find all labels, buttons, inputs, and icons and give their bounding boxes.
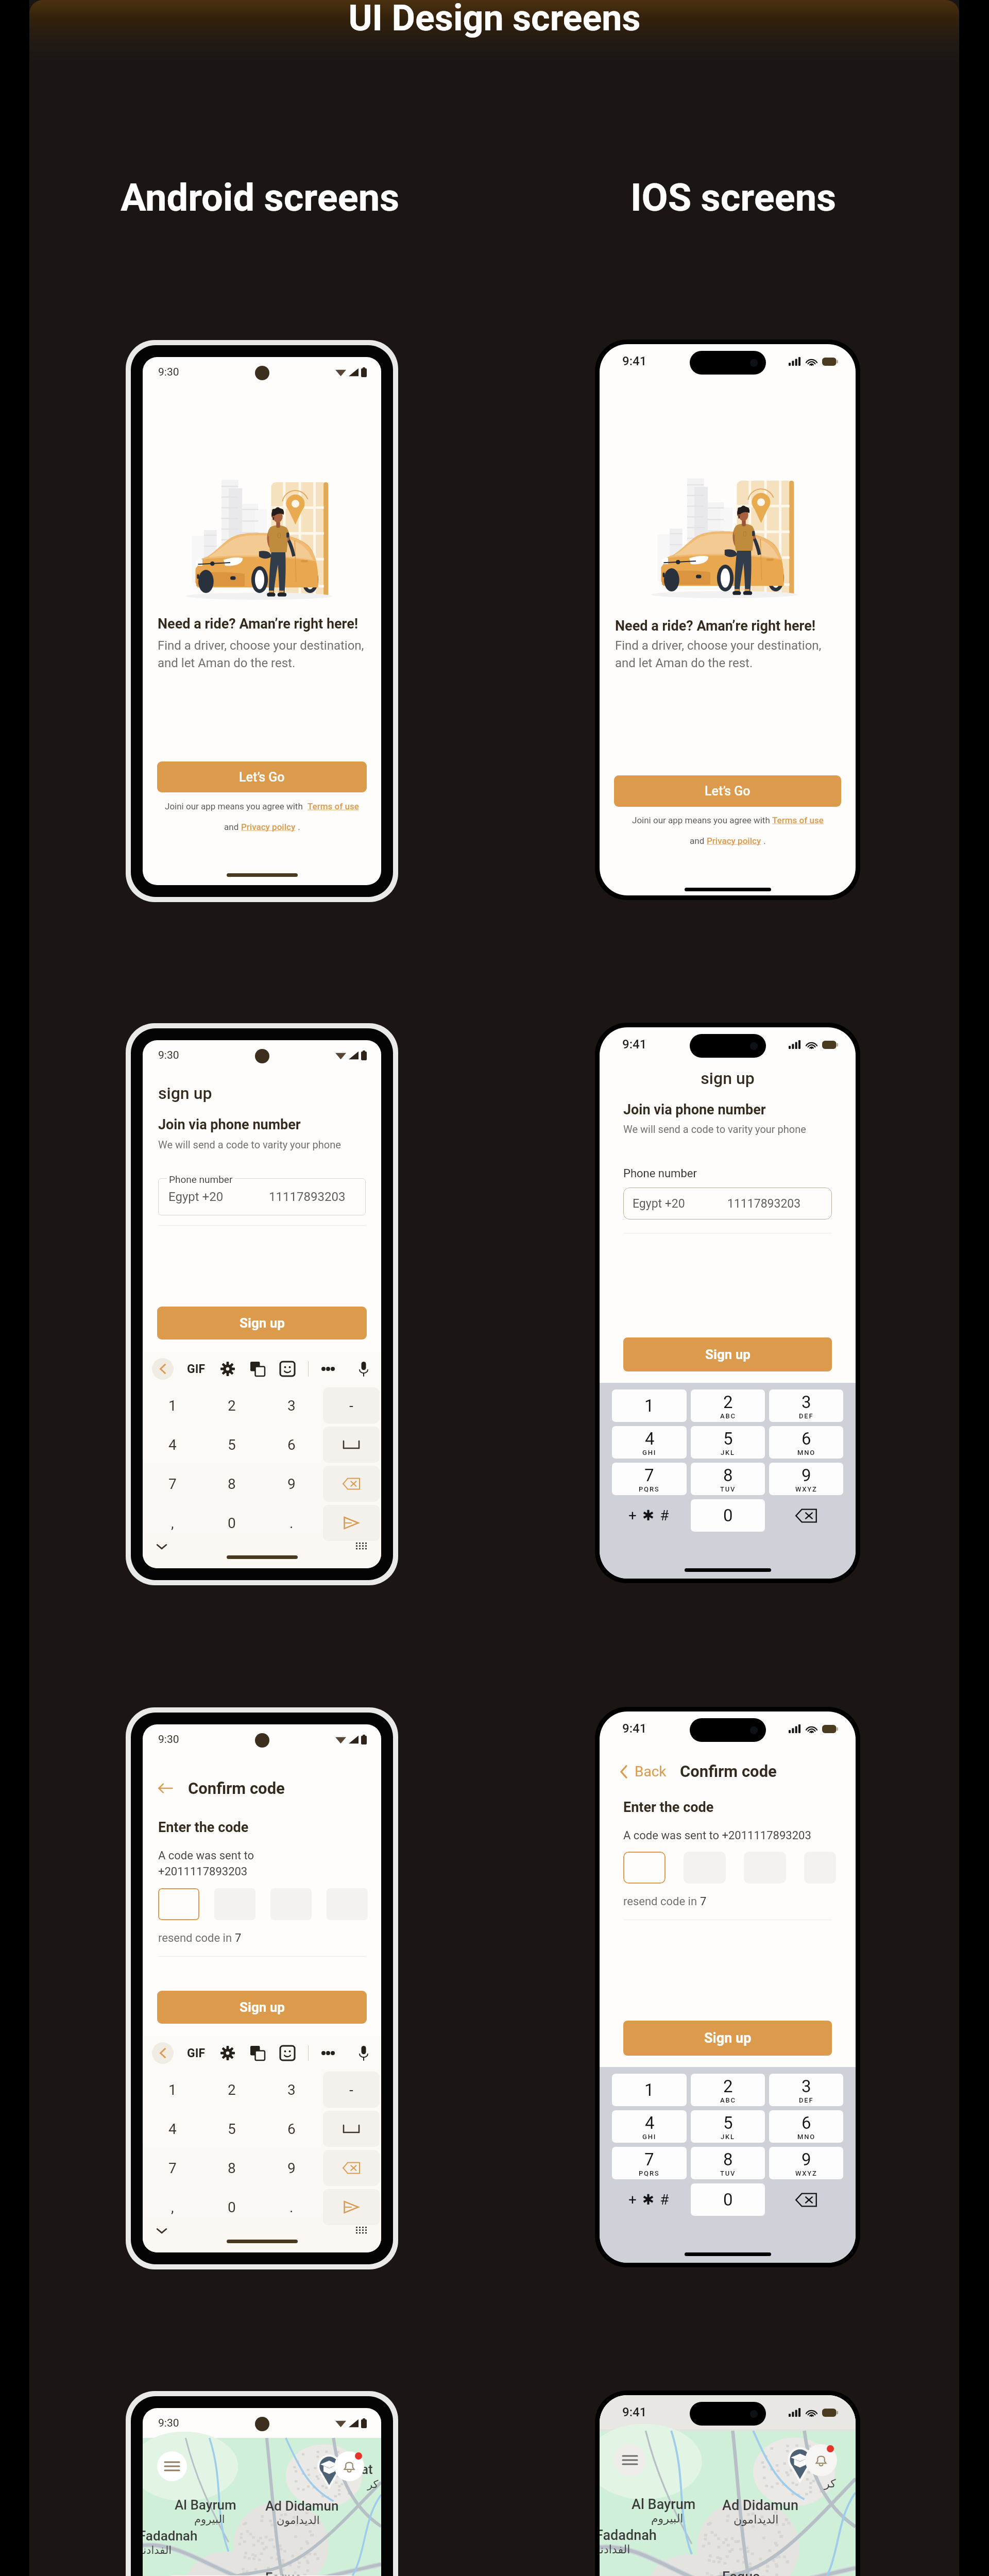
button[interactable]: Translate: [249, 2045, 266, 2061]
button[interactable]: .: [263, 1505, 320, 1541]
button[interactable]: 0: [203, 2189, 260, 2225]
button[interactable]: 2: [203, 1387, 260, 1423]
button[interactable]: 3: [769, 2074, 843, 2106]
button[interactable]: Privacy poilcy: [241, 822, 296, 832]
button[interactable]: 7: [144, 2150, 200, 2186]
button[interactable]: 1: [612, 2074, 687, 2106]
button[interactable]: Sign up: [623, 2021, 832, 2056]
button[interactable]: Sign up: [157, 1991, 367, 2024]
button[interactable]: 2: [691, 1389, 765, 1422]
button[interactable]: .: [263, 2189, 320, 2225]
button[interactable]: 6: [263, 1427, 320, 1463]
button[interactable]: Keyboard layout: [354, 1543, 370, 1551]
button[interactable]: -: [323, 1387, 380, 1423]
button[interactable]: 4: [144, 2111, 200, 2147]
button[interactable]: 1: [144, 2072, 200, 2108]
button[interactable]: Safety: [316, 2455, 342, 2481]
button[interactable]: 9: [769, 1463, 843, 1495]
button[interactable]: Back: [619, 1763, 667, 1780]
button[interactable]: 9: [263, 2150, 320, 2186]
button[interactable]: 0: [691, 2183, 765, 2216]
button[interactable]: 6: [769, 1426, 843, 1459]
button[interactable]: 7: [144, 1466, 200, 1502]
button[interactable]: 6: [263, 2111, 320, 2147]
button[interactable]: 4: [144, 1427, 200, 1463]
button[interactable]: Let’s Go: [614, 775, 841, 807]
button[interactable]: Sign up: [623, 1337, 832, 1371]
button[interactable]: 7: [612, 1463, 687, 1495]
button[interactable]: Menu: [614, 2444, 646, 2476]
button[interactable]: More: [320, 1361, 336, 1377]
button[interactable]: More: [320, 2045, 336, 2061]
button[interactable]: 4: [612, 2110, 687, 2143]
button[interactable]: GIF: [187, 1362, 205, 1376]
button[interactable]: 5: [203, 1427, 260, 1463]
button[interactable]: 9: [769, 2147, 843, 2179]
button[interactable]: [323, 1466, 380, 1502]
button[interactable]: 3: [263, 2072, 320, 2108]
button[interactable]: [323, 1427, 380, 1463]
button[interactable]: Back: [152, 1358, 174, 1380]
button[interactable]: Keyboard layout: [354, 2227, 370, 2235]
button[interactable]: ,: [144, 1505, 200, 1541]
button[interactable]: Sign up: [157, 1307, 367, 1340]
button[interactable]: Voice input: [355, 2045, 372, 2061]
button[interactable]: Hide keyboard: [154, 2227, 169, 2235]
button[interactable]: 1: [612, 1389, 687, 1422]
button[interactable]: 0: [691, 1499, 765, 1532]
button[interactable]: Terms of use: [308, 801, 359, 811]
button[interactable]: 8: [691, 2147, 765, 2179]
button[interactable]: ,: [144, 2189, 200, 2225]
button[interactable]: 7: [612, 2147, 687, 2179]
button[interactable]: Translate: [249, 1361, 266, 1377]
button[interactable]: [323, 2189, 380, 2225]
button[interactable]: Egypt +20: [623, 1188, 832, 1219]
button[interactable]: Menu: [157, 2451, 187, 2481]
button[interactable]: [323, 2150, 380, 2186]
button[interactable]: [323, 2111, 380, 2147]
button[interactable]: Delete: [769, 2183, 843, 2216]
button[interactable]: 2: [691, 2074, 765, 2106]
button[interactable]: 1: [144, 1387, 200, 1423]
button[interactable]: 5: [691, 2110, 765, 2143]
button[interactable]: Settings: [219, 1361, 236, 1377]
button[interactable]: Stickers: [279, 1361, 296, 1377]
button[interactable]: Terms of use: [772, 815, 824, 825]
button[interactable]: Privacy poilcy: [707, 836, 761, 846]
button[interactable]: Settings: [219, 2045, 236, 2061]
button[interactable]: 3: [769, 1389, 843, 1422]
button[interactable]: 8: [691, 1463, 765, 1495]
button[interactable]: Safety: [787, 2448, 813, 2475]
button[interactable]: -: [323, 2072, 380, 2108]
button[interactable]: 0: [203, 1505, 260, 1541]
button[interactable]: Delete: [769, 1499, 843, 1532]
button[interactable]: Hide keyboard: [154, 1543, 169, 1551]
button[interactable]: Notifications: [334, 2451, 364, 2481]
button[interactable]: 4: [612, 1426, 687, 1459]
button[interactable]: 6: [769, 2110, 843, 2143]
button[interactable]: [323, 1505, 380, 1541]
button[interactable]: 8: [203, 1466, 260, 1502]
button[interactable]: 9: [263, 1466, 320, 1502]
button[interactable]: 3: [263, 1387, 320, 1423]
button[interactable]: 5: [691, 1426, 765, 1459]
button[interactable]: 2: [203, 2072, 260, 2108]
button[interactable]: Code digit 1: [158, 1888, 199, 1920]
button[interactable]: GIF: [187, 2046, 205, 2060]
button[interactable]: Voice input: [355, 1361, 372, 1377]
button[interactable]: Back: [152, 2042, 174, 2064]
button[interactable]: + ✱ #: [612, 2183, 687, 2216]
button[interactable]: Back: [154, 1777, 177, 1800]
button[interactable]: + ✱ #: [612, 1499, 687, 1532]
button[interactable]: Let’s Go: [157, 761, 367, 792]
button[interactable]: Stickers: [279, 2045, 296, 2061]
button[interactable]: 8: [203, 2150, 260, 2186]
button[interactable]: Egypt +20: [158, 1178, 366, 1215]
button[interactable]: Notifications: [805, 2444, 837, 2476]
